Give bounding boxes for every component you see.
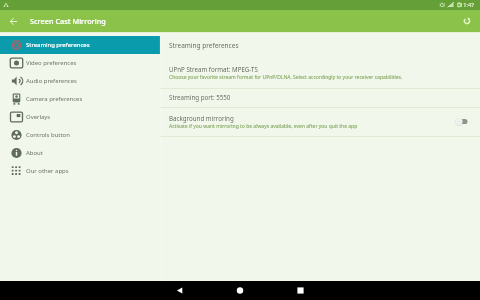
button[interactable]: Video preferences xyxy=(0,54,160,72)
staticText: Camera preferences xyxy=(26,95,83,103)
staticText: Activate if you want mirroring to be alw… xyxy=(169,123,358,130)
staticText: About xyxy=(26,149,43,157)
staticText: Background mirroring xyxy=(169,114,234,122)
button[interactable]: Streaming preferences xyxy=(0,36,160,54)
staticText: Video preferences xyxy=(26,59,77,67)
button[interactable]: Background mirroring toggle xyxy=(442,107,480,137)
button[interactable]: Streaming preferences xyxy=(160,35,480,57)
staticText: Screen Cast Mirroring xyxy=(30,16,106,26)
button[interactable]: UPnP Stream format: MPEG-TS xyxy=(160,57,480,88)
staticText: Audio preferences xyxy=(26,77,77,85)
staticText: Streaming preferences xyxy=(169,41,239,50)
button[interactable]: Background mirroring xyxy=(160,107,480,137)
button[interactable]: Camera preferences xyxy=(0,90,160,108)
button[interactable]: Our other apps xyxy=(0,162,160,180)
button[interactable]: Streaming port: 5550 xyxy=(160,87,480,106)
button[interactable]: Overlays xyxy=(0,108,160,126)
staticText: 11:47 xyxy=(460,1,475,9)
staticText: Overlays xyxy=(26,113,51,121)
button[interactable]: Audio preferences xyxy=(0,72,160,90)
button[interactable]: About xyxy=(0,144,160,162)
staticText: Controls button xyxy=(26,131,70,139)
button[interactable]: Refresh xyxy=(454,10,480,32)
staticText: Streaming preferences xyxy=(26,41,90,49)
staticText: Our other apps xyxy=(26,167,69,175)
staticText: UPnP Stream format: MPEG-TS xyxy=(169,65,258,73)
button[interactable]: Controls button xyxy=(0,126,160,144)
button[interactable]: Navigate up xyxy=(0,10,27,32)
staticText: Choose your favorite stream format for U… xyxy=(169,74,403,81)
staticText: Streaming port: 5550 xyxy=(169,93,231,101)
